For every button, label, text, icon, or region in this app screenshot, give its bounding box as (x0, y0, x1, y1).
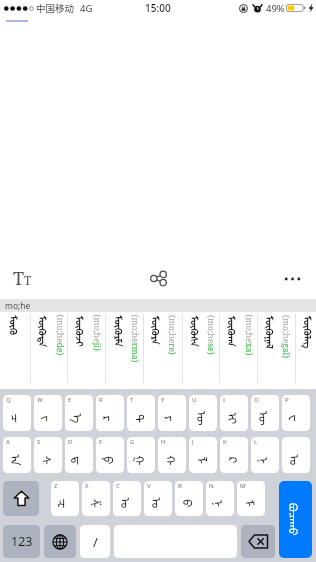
staticText: 49% (266, 2, 285, 15)
button[interactable]: ᠮᠥᠬᠥ (0, 312, 30, 389)
staticText: R (99, 396, 103, 404)
staticText: (mo;here) (166, 315, 178, 355)
staticText: ᠮᠥᠬᠥᠷᠡ (149, 316, 166, 345)
button[interactable]: Delete (241, 525, 275, 558)
staticText: O (254, 396, 259, 404)
staticText: ᠹ (100, 456, 121, 465)
button[interactable]: ᠮᠥᠬᠥᠵᠢ (67, 312, 105, 389)
staticText: H (161, 438, 166, 446)
button[interactable]: L (251, 437, 279, 473)
staticText: W (37, 396, 43, 404)
button[interactable]: X (82, 481, 110, 516)
button[interactable]: Switch keyboard language (44, 525, 76, 558)
button[interactable]: More options (270, 258, 315, 299)
staticText: L (254, 438, 258, 446)
button[interactable]: H (158, 437, 186, 473)
button[interactable]: T (127, 395, 155, 431)
staticText: ᠦ (193, 411, 214, 426)
staticText: (mo;heji) (90, 314, 102, 351)
button[interactable]: Text format (0, 258, 44, 299)
staticText: ᠠ (6, 454, 27, 466)
staticText: ᠨ (209, 499, 230, 507)
button[interactable]: Share (136, 258, 180, 299)
staticText: I (223, 396, 226, 404)
staticText: ᠴ (6, 413, 27, 423)
staticText: ᠨ (254, 456, 275, 464)
staticText: C (116, 482, 120, 490)
button[interactable]: B (175, 481, 203, 516)
staticText: ᠵ (37, 415, 58, 421)
button[interactable]: ᠮᠥᠬᠥᠳᠡ (30, 312, 67, 389)
button[interactable]: W (34, 395, 62, 431)
button[interactable]: ᠮᠥᠬᠥᠭᠠᠯ (257, 312, 295, 389)
button[interactable]: Z (51, 481, 79, 516)
staticText: ᠬ (162, 455, 183, 466)
button[interactable]: O (251, 395, 279, 431)
staticText: J (192, 438, 194, 446)
staticText: ᠺ (224, 457, 245, 464)
staticText: ᠲ (131, 414, 152, 423)
button[interactable]: ᠣ (282, 437, 310, 473)
button[interactable]: C (113, 481, 141, 516)
button[interactable]: / (80, 525, 110, 558)
staticText: ᠰ (37, 455, 58, 465)
button[interactable]: ᠮᠥᠬᠥᠯᠡᠭ (295, 312, 316, 389)
button[interactable]: V (144, 481, 172, 516)
staticText: ᠮᠥᠬᠥᠳᠡ (36, 316, 53, 347)
button[interactable]: G (127, 437, 155, 473)
button[interactable]: E (65, 395, 93, 431)
button[interactable]: Y (158, 395, 186, 431)
button[interactable]: F (96, 437, 124, 473)
staticText: ᠣ (285, 454, 306, 466)
staticText: ᠱ (85, 498, 106, 508)
staticText: ᠮ (240, 499, 261, 507)
staticText: E (68, 396, 72, 404)
staticText: V (147, 482, 151, 490)
staticText: ᠶ (161, 415, 182, 421)
button[interactable]: M (237, 481, 265, 516)
staticText: ᠤ (147, 497, 168, 509)
staticText: ᠸ (285, 414, 306, 422)
button[interactable]: 123 (3, 525, 40, 558)
staticText: N (209, 482, 214, 490)
button[interactable]: J (189, 437, 217, 473)
staticText: Z (54, 482, 58, 490)
button[interactable]: ᠮᠥᠬᠥᠰᠡ (182, 312, 219, 389)
staticText: A (6, 438, 10, 446)
button[interactable]: Q (3, 395, 31, 431)
button[interactable]: P (282, 395, 310, 431)
staticText: ᠥ (255, 411, 276, 426)
button[interactable]: N (206, 481, 234, 516)
staticText: (mo;hede) (53, 314, 65, 355)
button[interactable]: D (65, 437, 93, 473)
staticText: Y (161, 396, 165, 404)
staticText: T (130, 396, 134, 404)
button[interactable]: ᠮᠥᠬᠥᠷᠡ (143, 312, 182, 389)
staticText: ᠷ (99, 415, 120, 421)
staticText: S (37, 438, 41, 446)
staticText: ᠳ (69, 456, 90, 465)
button[interactable]: ᠮᠥᠬᠥᠬᠠ (219, 312, 257, 389)
button[interactable]: K (220, 437, 248, 473)
button[interactable]: Shift (3, 481, 39, 516)
staticText: ᠪᠤᠴᠠᠬᠤ (286, 503, 305, 536)
staticText: (mo;hegal) (280, 315, 292, 359)
button[interactable]: I (220, 395, 248, 431)
staticText: ᠡ (68, 413, 89, 423)
staticText: 123 (11, 533, 33, 550)
staticText: (mo;hexa) (242, 314, 254, 355)
button[interactable]: S (34, 437, 62, 473)
staticText: (mo;herma) (128, 314, 140, 363)
staticText: ᠤ (116, 497, 137, 509)
button[interactable]: A (3, 437, 31, 473)
button[interactable]: U (189, 395, 217, 431)
button[interactable]: ᠮᠥᠬᠥᠷᠮᠠ (105, 312, 143, 389)
staticText: P (285, 396, 289, 404)
button[interactable]: R (96, 395, 124, 431)
button[interactable]: ᠪᠤᠴᠠᠬᠤ (279, 481, 312, 558)
staticText: ᠮᠥᠬᠥ (6, 315, 23, 335)
staticText: ᠮᠥᠬᠥᠷᠮᠠ (111, 315, 128, 347)
staticText: ᠢ (223, 412, 244, 424)
staticText: D (68, 438, 73, 446)
